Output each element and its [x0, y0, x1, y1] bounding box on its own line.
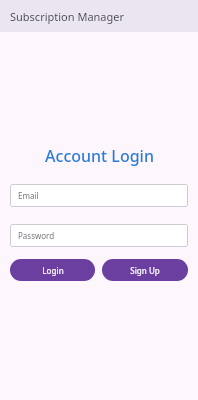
staticText: Password	[18, 230, 55, 241]
staticText: Email	[18, 190, 39, 201]
staticText: Subscription Manager	[10, 9, 125, 24]
button[interactable]: Email	[10, 184, 188, 207]
button[interactable]: Password	[10, 224, 188, 247]
staticText: Account Login	[45, 145, 154, 167]
button[interactable]: Login	[10, 259, 95, 281]
staticText: Login	[42, 265, 64, 276]
button[interactable]: Sign Up	[102, 259, 188, 281]
staticText: Sign Up	[130, 265, 160, 276]
